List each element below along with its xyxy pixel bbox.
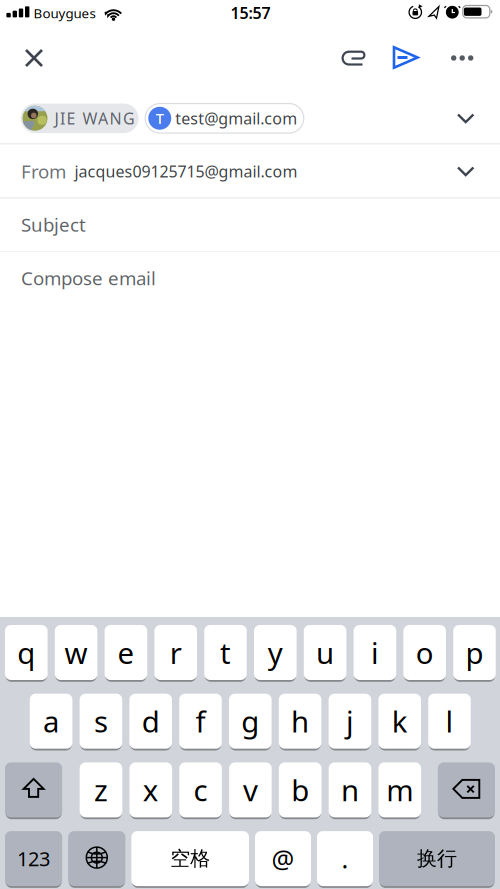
button[interactable]: u [304,624,346,681]
staticText: a [43,702,59,741]
staticText: z [94,770,108,809]
staticText: u [316,633,334,672]
button[interactable]: w [55,624,97,681]
button[interactable]: r [154,624,197,681]
staticText: m [386,770,413,809]
button[interactable]: From [0,144,500,198]
staticText: Compose email [21,266,156,290]
staticText: y [268,633,283,672]
button[interactable]: v [229,761,272,818]
staticText: From [21,159,66,184]
button[interactable]: g [229,693,272,750]
staticText: b [291,770,309,809]
button[interactable]: l [428,693,471,750]
staticText: t [220,633,231,672]
button[interactable]: a [30,693,72,750]
staticText: . [341,842,348,875]
staticText: 换行 [417,846,457,871]
staticText: @ [271,842,294,875]
staticText: l [445,702,453,741]
button[interactable]: Expand recipients [444,96,488,140]
button[interactable]: 换行 [379,830,495,887]
staticText: s [94,702,108,741]
button[interactable]: JIE WANG [21,103,139,133]
button[interactable]: More options [440,36,496,80]
staticText: 15:57 [230,2,270,23]
staticText: Bouygues [33,4,95,22]
button[interactable]: m [378,761,421,818]
button[interactable]: Attach file [322,36,378,80]
staticText: k [392,702,408,741]
staticText: d [142,702,160,741]
staticText: w [65,633,88,672]
staticText: o [416,633,434,672]
button[interactable]: Shift [5,761,62,818]
button[interactable]: i [354,624,396,681]
button[interactable]: j [329,693,371,750]
staticText: i [371,633,379,672]
button[interactable]: p [453,624,496,681]
staticText: n [341,770,359,809]
staticText: c [194,770,208,809]
staticText: q [17,633,35,672]
button[interactable]: Next keyboard [68,830,125,887]
staticText: h [291,702,309,741]
button[interactable]: d [129,693,172,750]
button[interactable]: s [80,693,122,750]
staticText: Subject [21,212,86,237]
button[interactable]: . [317,830,373,887]
button[interactable]: Subject [0,198,500,251]
staticText: 123 [17,845,50,872]
button[interactable]: Compose email [0,251,500,331]
staticText: T [156,108,164,128]
button[interactable]: T [145,103,304,133]
button[interactable]: x [129,761,172,818]
button[interactable]: n [329,761,371,818]
staticText: r [170,633,182,672]
button[interactable]: e [105,624,147,681]
button[interactable]: 空格 [131,830,249,887]
staticText: JIE WANG [55,108,135,129]
button[interactable]: f [179,693,222,750]
button[interactable]: Send [377,36,433,80]
staticText: f [195,702,205,741]
button[interactable]: h [279,693,321,750]
staticText: test@gmail.com [175,108,297,129]
staticText: 空格 [170,846,210,871]
button[interactable]: Delete [438,761,495,818]
staticText: j [346,702,354,741]
staticText: v [243,770,258,809]
button[interactable]: @ [255,830,311,887]
button[interactable]: c [179,761,222,818]
staticText: p [465,633,483,672]
button[interactable]: Close [12,36,56,80]
button[interactable]: o [403,624,446,681]
staticText: e [117,633,134,672]
button[interactable]: k [378,693,421,750]
button[interactable]: z [80,761,122,818]
button[interactable]: b [279,761,321,818]
button[interactable]: t [204,624,247,681]
staticText: jacques09125715@gmail.com [74,161,297,182]
staticText: g [241,702,259,741]
button[interactable]: q [5,624,48,681]
button[interactable]: 123 [5,830,62,887]
button[interactable]: y [254,624,297,681]
staticText: x [143,770,159,809]
